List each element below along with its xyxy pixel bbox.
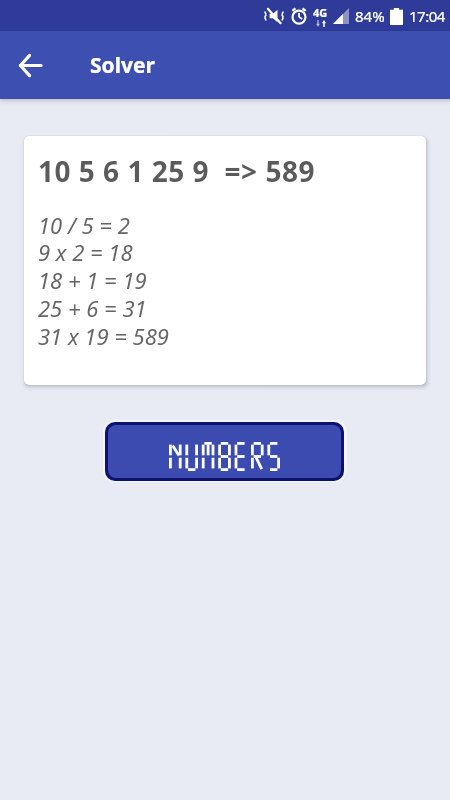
staticText: Solver (90, 51, 155, 80)
staticText: 4G (313, 5, 328, 20)
button[interactable] (8, 43, 52, 87)
button[interactable] (105, 422, 344, 481)
staticText: 10 / 5 = 2 9 x 2 = 18 18 + 1 = 19 25 + 6… (38, 210, 169, 351)
staticText: 17:04 (409, 6, 445, 26)
staticText: 10 5 6 1 25 9 => 589 (38, 152, 315, 190)
staticText: 84% (355, 6, 385, 26)
